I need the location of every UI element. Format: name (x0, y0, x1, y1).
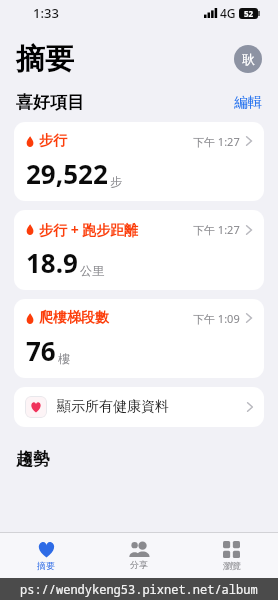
staticText: ps://wendykeng53.pixnet.net/album (20, 581, 258, 597)
staticText: 52 (244, 8, 254, 19)
button[interactable]: 瀏覽 (185, 541, 278, 571)
button[interactable]: 步行 + 跑步距離 (14, 210, 264, 290)
staticText: 分享 (130, 559, 148, 570)
staticText: 步 (110, 174, 122, 189)
staticText: 喜好項目 (16, 92, 84, 113)
button[interactable]: 顯示所有健康資料 (14, 387, 264, 427)
staticText: 樓 (58, 351, 70, 366)
staticText: 1:33 (33, 4, 59, 22)
staticText: 摘要 (16, 41, 74, 78)
staticText: 29,522 (26, 156, 108, 191)
staticText: 公里 (80, 263, 104, 278)
button[interactable]: 爬樓梯段數 (14, 299, 264, 378)
staticText: 步行 + 跑步距離 (39, 220, 139, 239)
staticText: 摘要 (37, 560, 55, 571)
button[interactable]: 步行 (14, 122, 264, 201)
staticText: 76 (26, 333, 56, 368)
staticText: 下午 1:27 (193, 134, 240, 149)
button[interactable]: 編輯 (234, 94, 262, 112)
button[interactable]: Profile (234, 45, 262, 73)
staticText: 下午 1:27 (193, 222, 240, 237)
staticText: 顯示所有健康資料 (57, 398, 169, 416)
staticText: 耿 (242, 51, 255, 67)
staticText: 瀏覽 (223, 560, 241, 571)
staticText: 編輯 (234, 94, 262, 112)
staticText: 18.9 (26, 245, 78, 280)
staticText: 4G (220, 5, 236, 21)
button[interactable]: 摘要 (0, 541, 92, 571)
staticText: 趨勢 (16, 449, 50, 470)
button[interactable]: 分享 (92, 541, 185, 570)
staticText: 爬樓梯段數 (39, 309, 109, 327)
staticText: 下午 1:09 (193, 311, 240, 326)
staticText: 步行 (39, 132, 67, 150)
